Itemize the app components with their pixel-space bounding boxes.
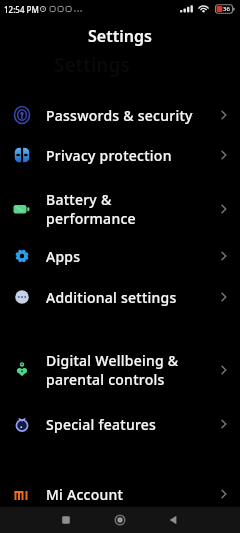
staticText: Settings <box>88 25 152 47</box>
staticText: parental controls <box>46 370 165 389</box>
button[interactable] <box>160 507 186 533</box>
staticText: 12:54 PM <box>4 4 39 15</box>
staticText: Digital Wellbeing & <box>46 351 179 370</box>
staticText: Mi Account <box>46 485 124 504</box>
staticText: Passwords & security <box>46 106 193 125</box>
staticText: Battery & <box>46 190 112 209</box>
staticText: 36 <box>223 5 230 13</box>
staticText: performance <box>46 209 136 228</box>
staticText: Privacy protection <box>46 146 172 165</box>
staticText: Special features <box>46 415 157 434</box>
button[interactable] <box>53 507 79 533</box>
button[interactable]: Additional settings <box>0 277 240 317</box>
button[interactable]: Digital Wellbeing & <box>0 342 240 398</box>
button[interactable]: Apps <box>0 236 240 276</box>
button[interactable]: Special features <box>0 404 240 444</box>
button[interactable]: Battery & <box>0 181 240 237</box>
button[interactable]: Mi Account <box>0 474 240 514</box>
button[interactable]: Privacy protection <box>0 135 240 175</box>
staticText: Settings <box>54 52 130 78</box>
staticText: Apps <box>46 247 81 266</box>
staticText: Additional settings <box>46 288 177 307</box>
button[interactable]: Passwords & security <box>0 95 240 135</box>
button[interactable] <box>107 507 133 533</box>
